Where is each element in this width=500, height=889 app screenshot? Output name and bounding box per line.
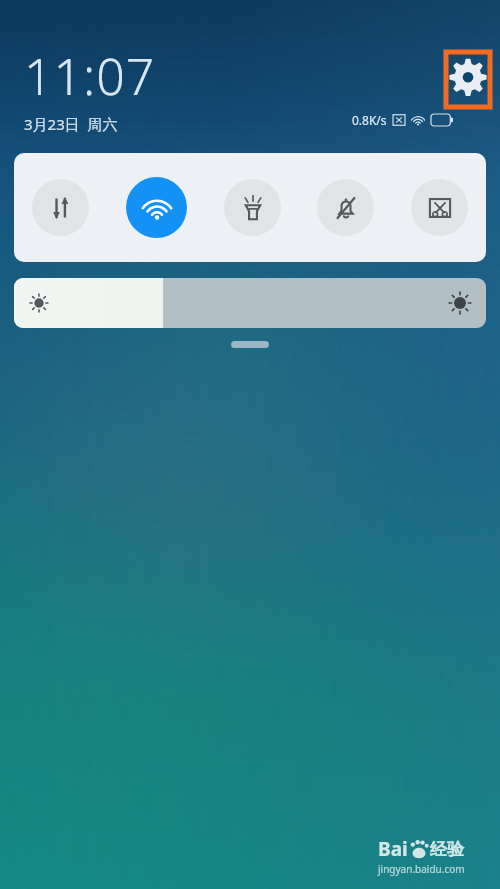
button[interactable]: Flashlight — [224, 179, 281, 236]
button[interactable]: Settings — [446, 52, 490, 107]
button[interactable]: Wi-Fi — [126, 177, 187, 238]
button[interactable]: Brightness — [14, 278, 486, 328]
button[interactable]: Screenshot — [411, 179, 468, 236]
staticText: 经验 — [430, 839, 464, 860]
button[interactable]: Silent mode — [317, 179, 374, 236]
staticText: 0.8K/s — [352, 112, 387, 128]
button[interactable]: Mobile data — [32, 179, 89, 236]
staticText: jingyan.baidu.com — [378, 862, 484, 876]
staticText: 3月23日 周六 — [24, 114, 118, 134]
button[interactable]: Expand — [231, 341, 269, 348]
staticText: Bai — [378, 836, 408, 862]
staticText: 11:07 — [24, 42, 156, 110]
